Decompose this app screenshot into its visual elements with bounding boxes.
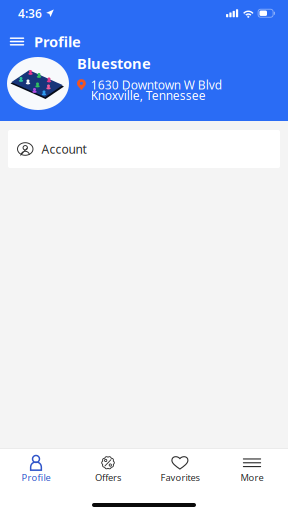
button[interactable]: Profile xyxy=(0,454,72,485)
staticText: 1630 Downtown W Blvd xyxy=(91,77,222,93)
staticText: Bluestone xyxy=(77,53,151,73)
button[interactable]: Menu xyxy=(6,31,28,51)
staticText: Favorites xyxy=(160,471,199,484)
staticText: Knoxville, Tennessee xyxy=(91,87,206,103)
staticText: Profile xyxy=(21,471,50,484)
staticText: Profile xyxy=(34,32,81,51)
staticText: 4:36 xyxy=(18,5,42,21)
button[interactable]: Account xyxy=(8,130,280,168)
staticText: Offers xyxy=(95,471,121,484)
button[interactable]: More xyxy=(216,454,288,485)
button[interactable]: Favorites xyxy=(144,454,216,485)
button[interactable]: Offers xyxy=(72,454,144,485)
staticText: Account xyxy=(41,141,86,157)
staticText: More xyxy=(240,471,263,484)
